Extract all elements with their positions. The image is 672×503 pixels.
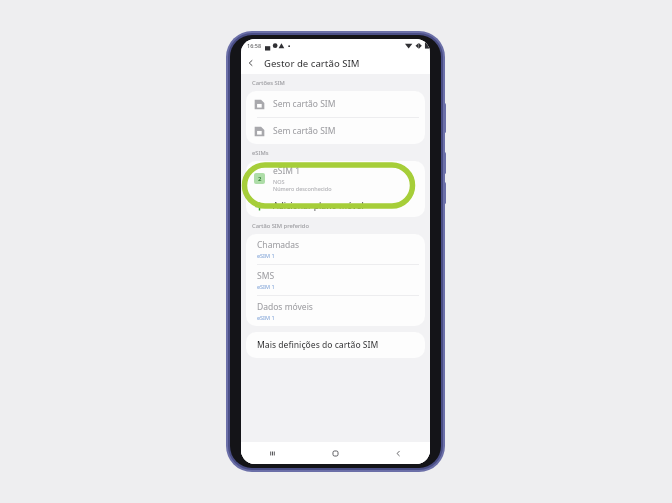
staticText: Cartão SIM preferido (252, 222, 309, 230)
button[interactable]: Sem cartão SIM (246, 118, 425, 144)
staticText: Sem cartão SIM (273, 98, 336, 110)
staticText: Dados móveis (257, 301, 313, 313)
button[interactable]: 2 (246, 161, 425, 195)
staticText: eSIM 1 (257, 314, 275, 321)
button[interactable]: Adicionar plano móvel (246, 195, 425, 217)
staticText: Mais definições do cartão SIM (257, 339, 379, 351)
staticText: eSIMs (252, 149, 269, 157)
staticText: Gestor de cartão SIM (264, 57, 360, 70)
button[interactable]: Dados móveis (246, 296, 425, 326)
button[interactable]: Home (304, 442, 367, 464)
staticText: Adicionar plano móvel (273, 200, 364, 212)
button[interactable]: Mais definições do cartão SIM (246, 332, 425, 358)
staticText: 2 (258, 175, 262, 183)
staticText: SMS (257, 270, 275, 282)
staticText: Cartões SIM (252, 79, 285, 87)
staticText: Chamadas (257, 239, 300, 251)
staticText: eSIM 1 (257, 252, 275, 259)
button[interactable]: Back (367, 442, 430, 464)
staticText: NOS (273, 178, 285, 185)
staticText: eSIM 1 (273, 165, 301, 177)
button[interactable]: Back (241, 53, 261, 73)
button[interactable]: SMS (246, 265, 425, 295)
staticText: Número desconhecido (273, 185, 332, 192)
staticText: 16:58 (247, 42, 262, 49)
staticText: Sem cartão SIM (273, 125, 336, 137)
button[interactable]: Sem cartão SIM (246, 91, 425, 117)
button[interactable]: Chamadas (246, 234, 425, 264)
button[interactable]: Recents (241, 442, 304, 464)
staticText: eSIM 1 (257, 283, 275, 290)
